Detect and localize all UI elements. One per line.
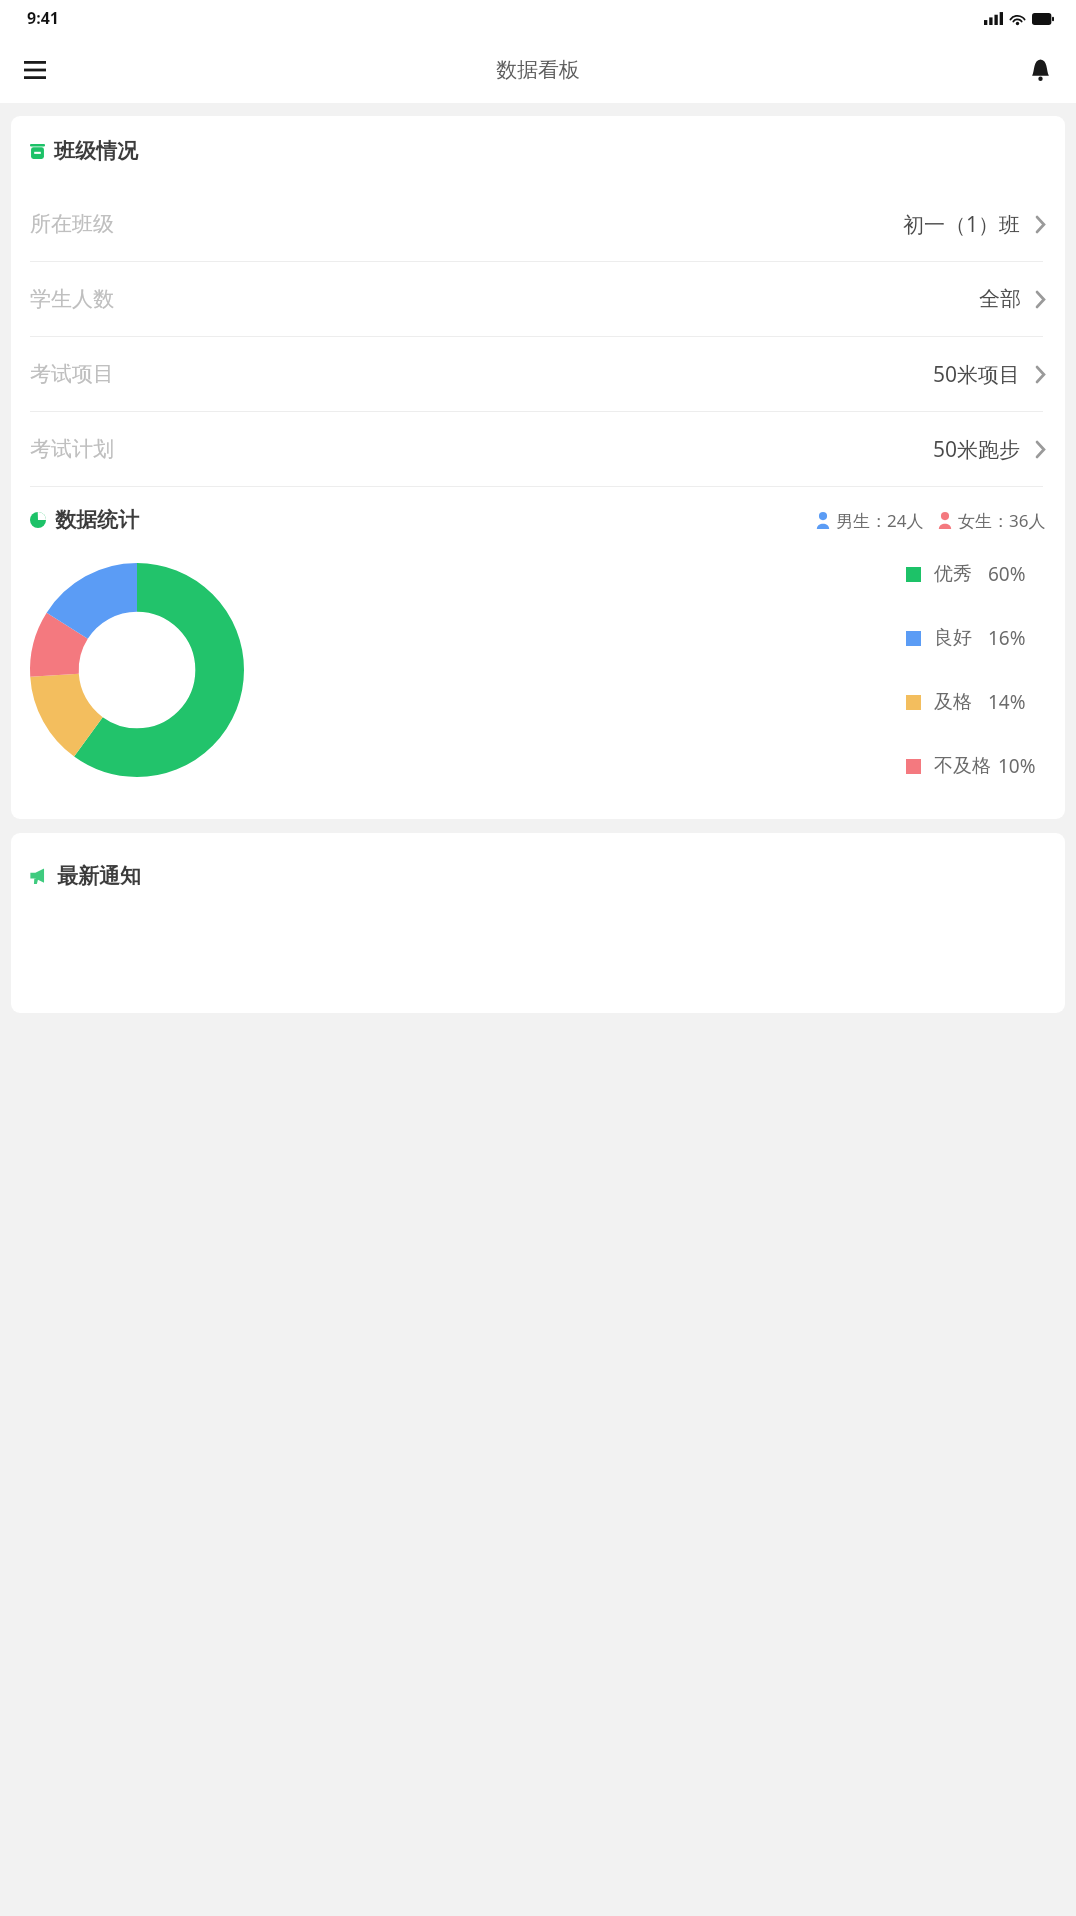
staticText: 14% — [988, 689, 1026, 715]
staticText: 最新通知 — [57, 863, 141, 889]
staticText: 班级情况 — [54, 138, 138, 164]
button[interactable]: Menu — [9, 44, 61, 96]
staticText: 女生：36人 — [958, 509, 1046, 532]
staticText: 考试项目 — [30, 361, 114, 387]
staticText: 所在班级 — [30, 211, 114, 237]
staticText: 16% — [988, 625, 1026, 651]
button[interactable]: 考试项目 — [30, 337, 1046, 411]
staticText: 及格 — [934, 690, 972, 714]
staticText: 数据看板 — [496, 57, 580, 83]
staticText: 50米项目 — [933, 360, 1021, 389]
staticText: 初一（1）班 — [903, 210, 1021, 239]
staticText: 男生：24人 — [836, 509, 924, 532]
staticText: 优秀 — [934, 562, 972, 586]
staticText: 数据统计 — [55, 507, 139, 533]
staticText: 9:41 — [27, 7, 59, 29]
staticText: 60% — [988, 561, 1026, 587]
staticText: 50米跑步 — [933, 435, 1021, 464]
staticText: 考试计划 — [30, 436, 114, 462]
staticText: 全部 — [979, 286, 1021, 312]
button[interactable]: 学生人数 — [30, 262, 1046, 336]
staticText: 良好 — [934, 626, 972, 650]
staticText: 10% — [998, 753, 1036, 779]
staticText: 学生人数 — [30, 286, 114, 312]
button[interactable]: Notifications — [1014, 44, 1066, 96]
button[interactable]: 所在班级 — [30, 187, 1046, 261]
staticText: 不及格 — [934, 754, 991, 778]
button[interactable]: 考试计划 — [30, 412, 1046, 486]
